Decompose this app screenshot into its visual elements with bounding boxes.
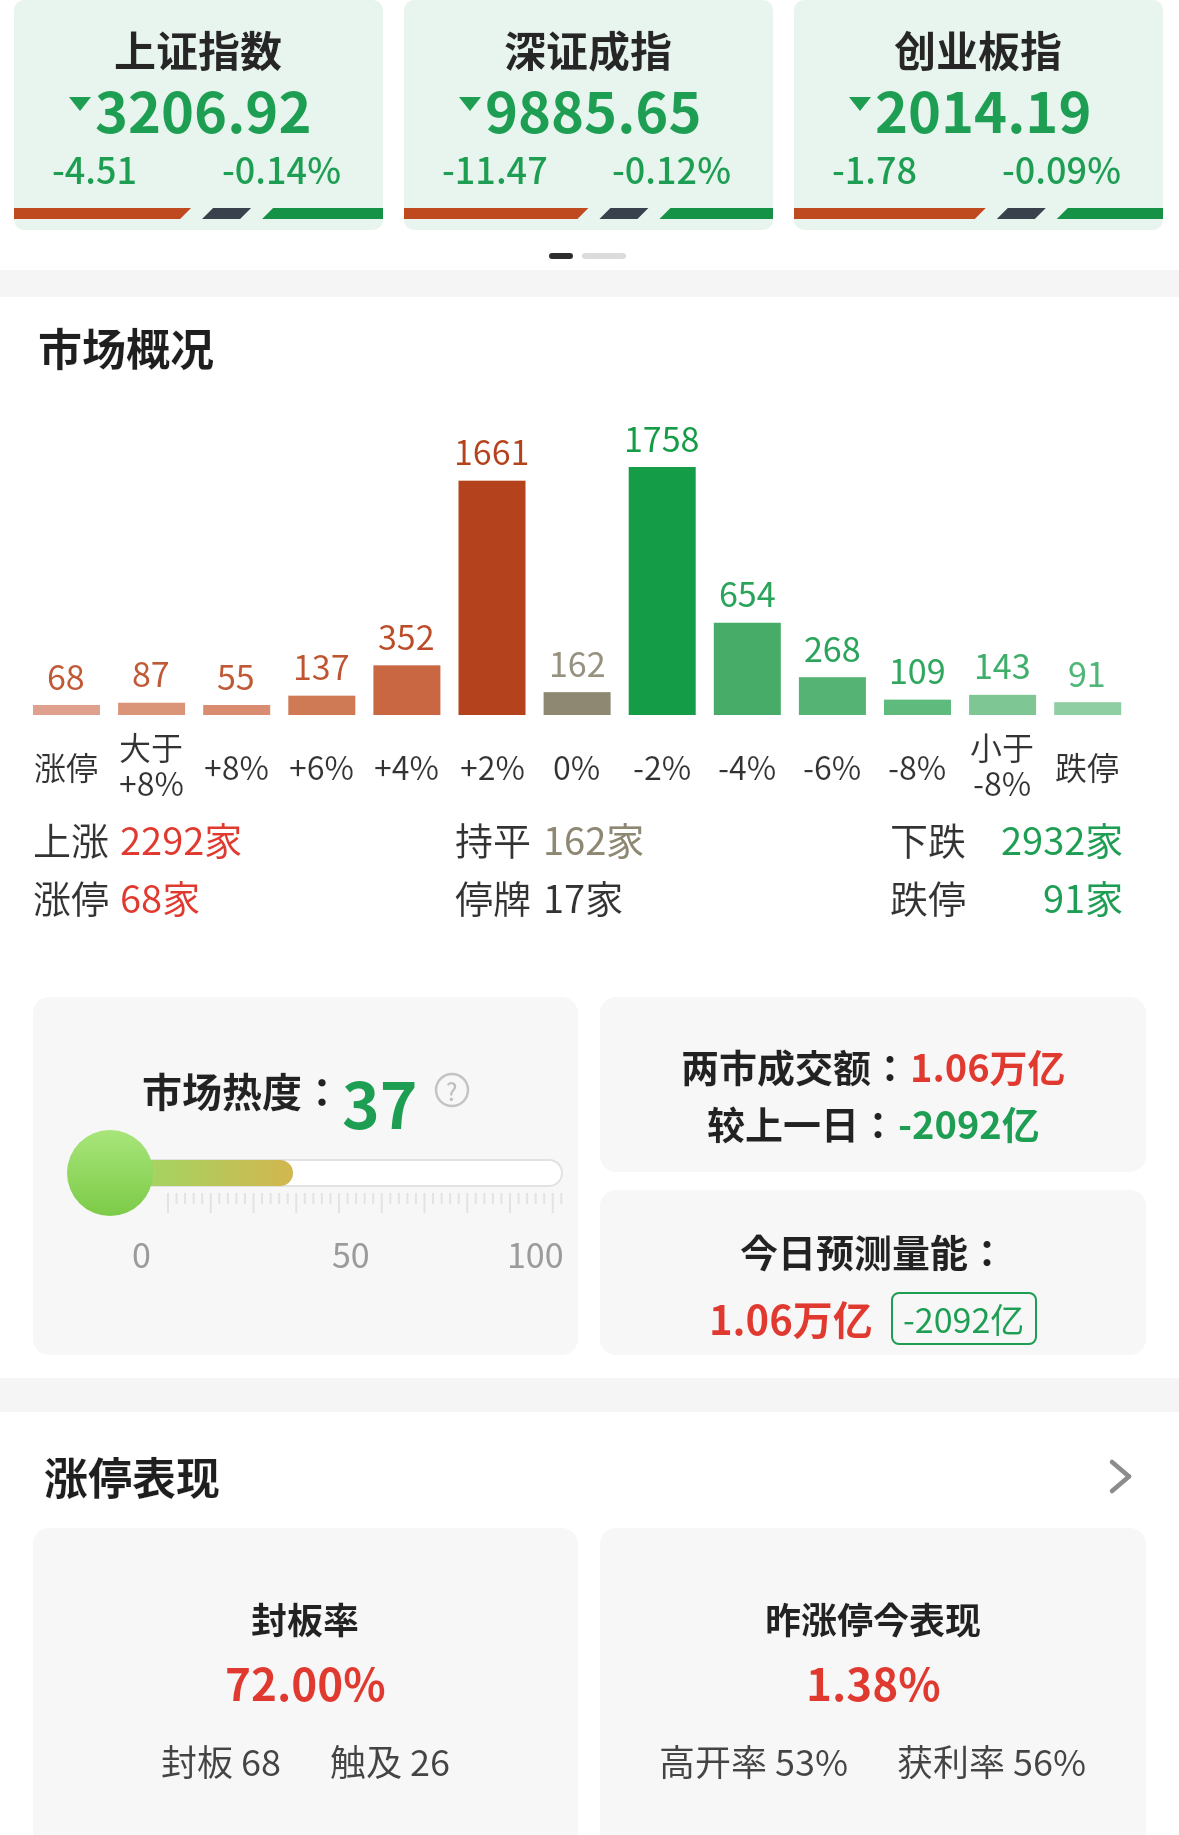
staticText: -4.51 xyxy=(52,142,138,188)
staticText: -1.78 xyxy=(832,142,918,188)
staticText: -0.12% xyxy=(612,142,731,188)
staticText: +8% xyxy=(204,743,269,781)
staticText: 跌停 xyxy=(1055,743,1120,781)
staticText: -0.14% xyxy=(222,142,341,188)
staticText: 创业板指 xyxy=(894,18,1063,74)
staticText: -4% xyxy=(718,743,777,781)
staticText: 较上一日： xyxy=(707,1095,898,1150)
staticText: 涨停 xyxy=(33,869,110,917)
staticText: 涨停表现 xyxy=(44,1444,220,1508)
staticText: 2292家 xyxy=(120,811,243,859)
staticText: 持平 xyxy=(455,811,532,859)
staticText: 下跌 xyxy=(890,811,967,859)
staticText: 2014.19 xyxy=(875,68,1092,138)
staticText: 触及 26 xyxy=(330,1734,451,1786)
staticText: -0.09% xyxy=(1002,142,1121,188)
button[interactable]: 市场热度： xyxy=(33,997,578,1355)
staticText: 3206.92 xyxy=(95,68,312,138)
staticText: 100 xyxy=(507,1229,564,1277)
staticText: 两市成交额： xyxy=(681,1038,910,1093)
button[interactable]: 封板率 xyxy=(33,1528,578,1835)
staticText: 68家 xyxy=(120,869,201,917)
staticText: 停牌 xyxy=(455,869,532,917)
staticText: 获利率 56% xyxy=(897,1734,1087,1786)
staticText: 143 xyxy=(974,640,1031,680)
staticText: +6% xyxy=(289,743,354,781)
staticText: 50 xyxy=(332,1229,370,1277)
staticText: 1758 xyxy=(624,413,700,453)
staticText: -2092亿 xyxy=(898,1095,1040,1150)
staticText: 上证指数 xyxy=(114,18,283,74)
staticText: 今日预测量能： xyxy=(740,1223,1007,1278)
staticText: -11.47 xyxy=(442,142,548,188)
button[interactable]: 深证成指 xyxy=(404,0,773,230)
staticText: 17家 xyxy=(543,869,624,917)
staticText: 1.06万亿 xyxy=(709,1289,873,1347)
staticText: 上涨 xyxy=(33,811,110,859)
staticText: +8% xyxy=(119,759,184,797)
staticText: 0 xyxy=(132,1229,151,1277)
staticText: ? xyxy=(446,1073,458,1108)
staticText: 封板 68 xyxy=(161,1734,282,1786)
staticText: 91 xyxy=(1068,648,1106,688)
staticText: 封板率 xyxy=(251,1592,360,1644)
staticText: 91家 xyxy=(1043,869,1124,917)
staticText: 137 xyxy=(293,641,350,681)
staticText: 1.06万亿 xyxy=(910,1038,1066,1093)
staticText: 162家 xyxy=(543,811,645,859)
staticText: 68 xyxy=(47,651,85,691)
staticText: 9885.65 xyxy=(485,68,702,138)
staticText: -8% xyxy=(973,759,1032,797)
staticText: 72.00% xyxy=(225,1650,386,1706)
staticText: +2% xyxy=(460,743,525,781)
button[interactable]: 今日预测量能： xyxy=(600,1190,1146,1355)
staticText: -2% xyxy=(633,743,692,781)
staticText: 涨停 xyxy=(34,743,99,781)
button[interactable]: 涨停表现 xyxy=(0,1438,1179,1514)
button[interactable]: 上证指数 xyxy=(14,0,383,230)
staticText: -6% xyxy=(803,743,862,781)
staticText: +4% xyxy=(374,743,439,781)
staticText: 2932家 xyxy=(1001,811,1124,859)
staticText: 87 xyxy=(132,648,170,688)
staticText: 深证成指 xyxy=(504,18,673,74)
staticText: 高开率 53% xyxy=(659,1734,849,1786)
staticText: 55 xyxy=(217,651,255,691)
button[interactable]: 创业板指 xyxy=(794,0,1163,230)
staticText: 跌停 xyxy=(890,869,967,917)
staticText: 昨涨停今表现 xyxy=(765,1592,982,1644)
staticText: -8% xyxy=(888,743,947,781)
staticText: 1.38% xyxy=(806,1650,941,1706)
staticText: 0% xyxy=(553,743,601,781)
staticText: 109 xyxy=(889,645,946,685)
button[interactable]: 昨涨停今表现 xyxy=(600,1528,1146,1835)
staticText: 162 xyxy=(549,638,606,678)
staticText: 37 xyxy=(342,1055,418,1125)
staticText: 市场热度： xyxy=(142,1061,342,1119)
staticText: 268 xyxy=(804,623,861,663)
staticText: 654 xyxy=(719,568,776,608)
staticText: 352 xyxy=(378,611,435,651)
staticText: 小于 xyxy=(970,723,1035,761)
staticText: 1661 xyxy=(454,426,530,466)
staticText: 大于 xyxy=(119,723,184,761)
button[interactable]: 两市成交额： xyxy=(600,997,1146,1172)
staticText: -2092亿 xyxy=(903,1294,1025,1343)
staticText: 市场概况 xyxy=(38,315,214,379)
